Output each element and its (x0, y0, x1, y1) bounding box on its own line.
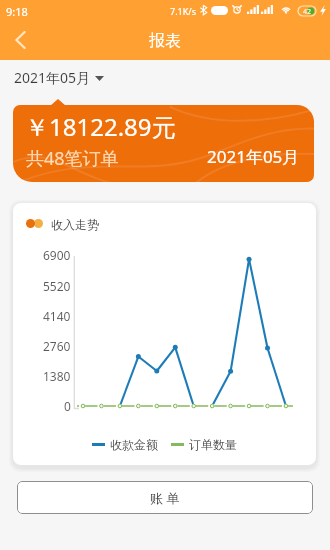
staticText: 0 (64, 398, 71, 414)
staticText: 5520 (43, 278, 71, 294)
staticText: 6900 (43, 247, 71, 263)
staticText: 共48笔订单 (26, 146, 119, 171)
staticText: 42 (303, 7, 312, 17)
staticText: 4140 (43, 308, 71, 324)
staticText: 9:18 (6, 4, 28, 19)
staticText: 7.1K/s (170, 5, 196, 17)
staticText: 2760 (43, 338, 71, 354)
staticText: ￥18122.89元 (25, 110, 176, 143)
staticText: 账 单 (150, 489, 180, 507)
staticText: 收入走势 (51, 217, 99, 232)
button[interactable]: Back (0, 20, 40, 60)
staticText: 订单数量 (189, 437, 237, 452)
staticText: 报表 (149, 31, 181, 51)
staticText: 2021年05月 (207, 145, 300, 168)
staticText: 1380 (43, 368, 71, 384)
staticText: 2021年05月 (14, 68, 91, 87)
staticText: 收款金额 (110, 437, 158, 452)
button[interactable]: 账 单 (17, 481, 313, 514)
button[interactable]: ￥18122.89元 (13, 105, 314, 182)
button[interactable]: 2021年05月 (14, 68, 104, 87)
